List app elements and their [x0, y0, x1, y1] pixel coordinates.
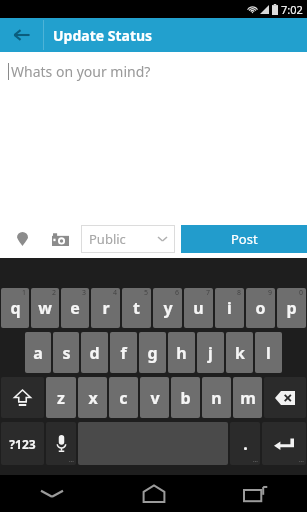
button[interactable]: r — [91, 288, 120, 328]
button[interactable]: w — [31, 288, 59, 328]
staticText: Update Status — [53, 26, 153, 45]
button[interactable]: j — [197, 332, 224, 373]
staticText: u — [193, 297, 204, 319]
staticText: p — [286, 297, 297, 319]
button[interactable]: Enter — [262, 422, 306, 465]
staticText: d — [89, 342, 100, 364]
button[interactable]: Delete — [264, 377, 306, 418]
staticText: Post — [231, 230, 258, 248]
button[interactable]: k — [226, 332, 253, 373]
staticText: s — [62, 342, 71, 364]
button[interactable]: Shift — [1, 377, 44, 418]
button[interactable]: Back — [0, 18, 43, 52]
staticText: ··· — [299, 457, 304, 465]
staticText: . — [243, 433, 248, 455]
button[interactable]: f — [110, 332, 137, 373]
button[interactable]: o — [246, 288, 275, 328]
staticText: j — [208, 342, 213, 364]
staticText: ··· — [69, 457, 74, 465]
staticText: c — [119, 387, 128, 409]
staticText: z — [57, 387, 65, 409]
button[interactable]: t — [122, 288, 151, 328]
button[interactable]: Add location — [9, 224, 35, 254]
staticText: l — [266, 342, 271, 364]
staticText: 6 — [175, 288, 180, 298]
button[interactable]: Hide keyboard — [0, 475, 103, 512]
button[interactable]: Post — [181, 225, 307, 253]
staticText: 3 — [82, 288, 87, 298]
staticText: i — [227, 297, 232, 319]
button[interactable]: ?123 — [1, 422, 44, 465]
staticText: k — [235, 342, 245, 364]
staticText: ··· — [253, 457, 258, 465]
staticText: 7 — [206, 288, 211, 298]
button[interactable]: d — [81, 332, 108, 373]
staticText: 8 — [237, 288, 242, 298]
staticText: r — [102, 297, 110, 319]
staticText: x — [88, 387, 98, 409]
staticText: 4 — [113, 288, 118, 298]
button[interactable]: n — [202, 377, 231, 418]
staticText: 2 — [52, 288, 57, 298]
button[interactable]: . — [230, 422, 260, 465]
staticText: h — [176, 342, 187, 364]
button[interactable]: y — [153, 288, 182, 328]
button[interactable]: q — [1, 288, 29, 328]
button[interactable]: e — [61, 288, 89, 328]
button[interactable]: Add photo — [45, 224, 75, 254]
staticText: y — [163, 297, 173, 319]
button[interactable]: z — [46, 377, 76, 418]
staticText: w — [38, 297, 52, 319]
staticText: 1 — [22, 288, 27, 298]
button[interactable]: Recent apps — [205, 475, 307, 512]
staticText: 9 — [268, 288, 273, 298]
staticText: m — [240, 387, 256, 409]
staticText: b — [180, 387, 191, 409]
staticText: o — [255, 297, 266, 319]
button[interactable]: a — [25, 332, 51, 373]
staticText: 5 — [144, 288, 149, 298]
button[interactable]: i — [215, 288, 244, 328]
button[interactable]: u — [184, 288, 213, 328]
staticText: v — [150, 387, 160, 409]
staticText: 0 — [299, 288, 304, 298]
staticText: q — [10, 297, 21, 319]
staticText: ?123 — [9, 436, 36, 452]
staticText: a — [33, 342, 43, 364]
staticText: Whats on your mind? — [11, 62, 151, 81]
button[interactable]: Public — [81, 225, 175, 253]
button[interactable]: m — [233, 377, 262, 418]
button[interactable]: h — [168, 332, 195, 373]
button[interactable]: p — [277, 288, 306, 328]
button[interactable]: s — [53, 332, 79, 373]
button[interactable]: Home — [103, 475, 205, 512]
button[interactable]: v — [140, 377, 169, 418]
button[interactable]: x — [78, 377, 107, 418]
button[interactable]: c — [109, 377, 138, 418]
staticText: 7:02 — [281, 2, 303, 17]
staticText: f — [120, 342, 127, 364]
staticText: Public — [89, 230, 126, 248]
staticText: n — [211, 387, 222, 409]
button[interactable]: g — [139, 332, 166, 373]
button[interactable]: Whats on your mind? — [0, 52, 307, 220]
button[interactable]: b — [171, 377, 200, 418]
staticText: e — [70, 297, 80, 319]
staticText: g — [147, 342, 158, 364]
staticText: t — [133, 297, 140, 319]
button[interactable]: l — [255, 332, 282, 373]
button[interactable]: Voice input — [46, 422, 76, 465]
